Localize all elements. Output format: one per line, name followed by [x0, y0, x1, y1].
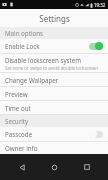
staticText: Passcode — [5, 130, 89, 138]
staticText: Change Wallpaper — [5, 76, 59, 84]
staticText: Settings — [39, 13, 70, 24]
button[interactable]: Passcode — [0, 127, 108, 141]
button[interactable]: Back — [11, 156, 33, 178]
staticText: Time out — [5, 104, 31, 112]
staticText: Main options — [5, 29, 44, 37]
button[interactable]: Preview — [0, 87, 108, 100]
button[interactable]: Disable lockscreen system — [0, 54, 108, 72]
button[interactable]: Recent apps — [76, 156, 98, 178]
button[interactable]: Time out — [0, 101, 108, 114]
staticText: Security — [5, 117, 29, 125]
other: Disabled — [89, 130, 103, 138]
button[interactable]: Enable Lock — [0, 39, 108, 53]
staticText: Set none or swipe to avoid double locksc… — [5, 65, 99, 71]
button[interactable]: Owner info — [0, 142, 108, 154]
button[interactable]: Home — [43, 156, 65, 178]
staticText: Owner info — [5, 144, 38, 152]
staticText: 19:32 — [94, 2, 106, 8]
staticText: Preview — [5, 90, 28, 98]
staticText: Disable lockscreen system — [5, 56, 82, 64]
other: Enabled — [89, 42, 103, 50]
button[interactable]: Change Wallpaper — [0, 73, 108, 86]
staticText: Enable Lock — [5, 42, 89, 50]
